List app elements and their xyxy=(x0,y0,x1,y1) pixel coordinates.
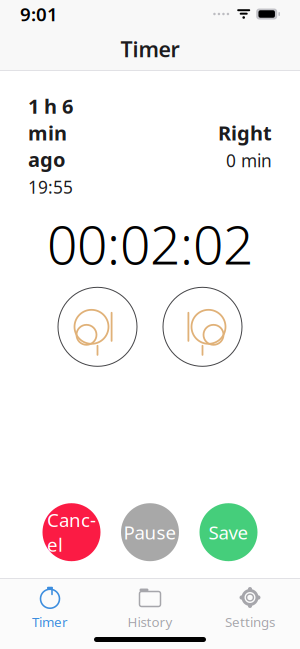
staticText: Pause xyxy=(123,520,176,545)
button[interactable]: Settings xyxy=(200,579,300,631)
staticText: 9:01 xyxy=(20,2,58,26)
button[interactable]: Save xyxy=(199,503,257,561)
button[interactable]: Right breast xyxy=(163,287,242,366)
staticText: 00:02:02 xyxy=(47,208,253,279)
button[interactable]: Timer xyxy=(0,579,100,631)
button[interactable]: Cancel xyxy=(42,503,100,561)
staticText: Cancel xyxy=(47,507,96,557)
button[interactable]: History xyxy=(100,579,200,631)
staticText: Timer xyxy=(32,613,68,631)
staticText: Timer xyxy=(120,35,179,63)
staticText: History xyxy=(127,613,172,631)
button[interactable]: Left breast xyxy=(58,287,137,366)
button[interactable]: Pause xyxy=(121,503,179,561)
staticText: 1 h 6 min ago xyxy=(28,93,73,172)
staticText: 19:55 xyxy=(28,175,73,198)
staticText: 0 min xyxy=(226,149,272,172)
staticText: Save xyxy=(208,520,248,545)
staticText: Right xyxy=(218,119,272,146)
staticText: Settings xyxy=(225,613,275,631)
